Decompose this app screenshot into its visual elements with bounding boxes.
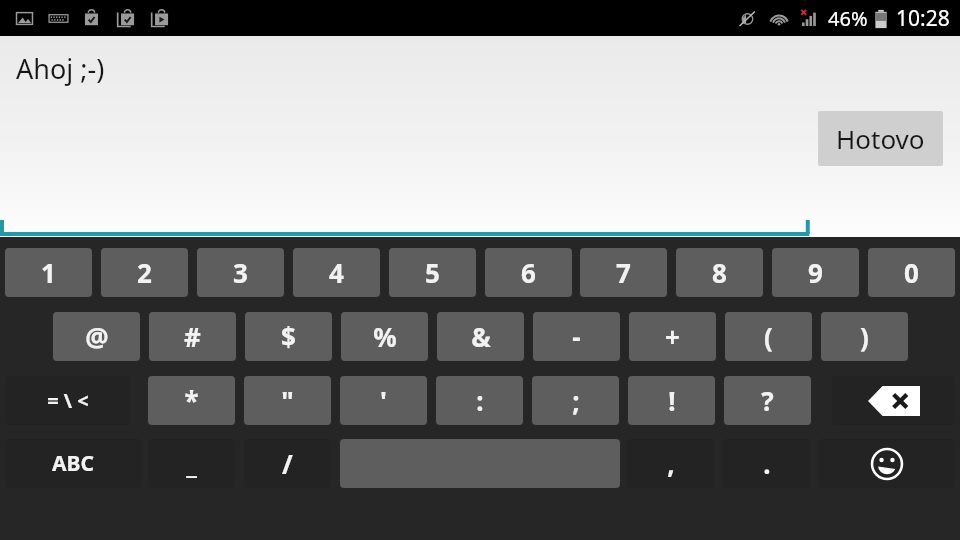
staticText: 3 [233, 255, 248, 290]
staticText: $ [281, 319, 296, 354]
staticText: @ [85, 319, 109, 354]
button[interactable]: ) [821, 312, 908, 361]
staticText: - [572, 319, 581, 354]
button[interactable]: Hotovo [818, 111, 943, 166]
button[interactable]: Emoji [819, 439, 955, 488]
button[interactable]: & [437, 312, 524, 361]
staticText: 2 [137, 255, 152, 290]
button[interactable]: Backspace [832, 376, 955, 425]
staticText: 8 [712, 255, 727, 290]
staticText: ? [761, 383, 774, 418]
staticText: & [471, 319, 491, 354]
button[interactable]: 8 [676, 248, 763, 297]
staticText: . [763, 446, 771, 481]
button[interactable]: 2 [101, 248, 188, 297]
staticText: ! [668, 383, 676, 418]
button[interactable]: ? [724, 376, 811, 425]
button[interactable]: , [627, 439, 714, 488]
button[interactable]: ; [532, 376, 619, 425]
button[interactable]: - [533, 312, 620, 361]
button[interactable]: 1 [5, 248, 92, 297]
staticText: ABC [52, 449, 94, 478]
button[interactable]: = \ < [5, 376, 130, 425]
button[interactable]: 6 [485, 248, 572, 297]
staticText: _ [186, 446, 197, 481]
staticText: 7 [616, 255, 631, 290]
staticText: 0 [904, 255, 919, 290]
staticText: 4 [329, 255, 344, 290]
button[interactable]: ABC [5, 439, 141, 488]
button[interactable]: * [148, 376, 235, 425]
button[interactable]: ( [725, 312, 812, 361]
button[interactable]: . [723, 439, 810, 488]
staticText: Hotovo [836, 121, 925, 156]
button[interactable]: _ [148, 439, 235, 488]
staticText: ) [860, 319, 869, 354]
staticText: ; [572, 383, 580, 418]
button[interactable]: ! [628, 376, 715, 425]
button[interactable]: 9 [772, 248, 859, 297]
button[interactable]: / [244, 439, 331, 488]
staticText: 1 [41, 255, 56, 290]
button[interactable]: ' [340, 376, 427, 425]
staticText: + [665, 319, 680, 354]
staticText: ( [764, 319, 773, 354]
staticText: % [373, 319, 397, 354]
staticText: = \ < [47, 387, 89, 414]
button[interactable]: + [629, 312, 716, 361]
staticText: / [282, 446, 293, 481]
staticText: Ahoj ;-) [16, 50, 105, 87]
button[interactable]: : [436, 376, 523, 425]
staticText: " [281, 383, 294, 418]
button[interactable]: 5 [389, 248, 476, 297]
staticText: ' [380, 383, 387, 418]
button[interactable]: # [149, 312, 236, 361]
button[interactable]: $ [245, 312, 332, 361]
button[interactable]: @ [53, 312, 140, 361]
staticText: , [667, 446, 675, 481]
button[interactable]: 0 [868, 248, 955, 297]
staticText: : [476, 383, 484, 418]
button[interactable]: % [341, 312, 428, 361]
staticText: 46% [828, 5, 868, 32]
button[interactable]: " [244, 376, 331, 425]
button[interactable]: 3 [197, 248, 284, 297]
button[interactable]: 7 [580, 248, 667, 297]
staticText: 5 [425, 255, 440, 290]
staticText: 10:28 [896, 4, 950, 33]
staticText: 9 [808, 255, 823, 290]
staticText: 6 [521, 255, 536, 290]
button[interactable]: 4 [293, 248, 380, 297]
staticText: # [184, 319, 201, 354]
staticText: * [184, 383, 199, 418]
